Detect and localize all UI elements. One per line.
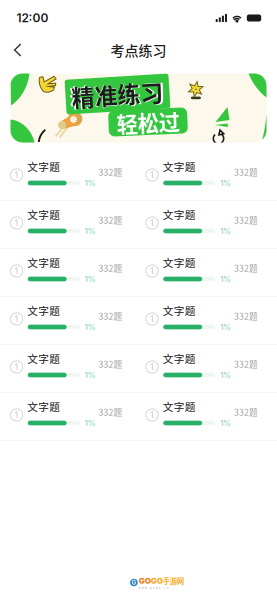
staticText: 1 xyxy=(14,314,18,324)
staticText: 332题 xyxy=(98,262,122,274)
staticText: 文字题 xyxy=(163,207,196,222)
button[interactable]: 1 xyxy=(0,297,135,344)
staticText: 1 xyxy=(150,362,154,372)
staticText: 1 xyxy=(150,218,154,228)
staticText: 文字题 xyxy=(27,303,60,318)
button[interactable]: 1 xyxy=(0,393,135,440)
button[interactable]: 1 xyxy=(135,249,271,296)
staticText: 12:00 xyxy=(16,11,48,25)
staticText: 文字题 xyxy=(163,255,196,270)
staticText: 1 xyxy=(14,410,18,420)
staticText: 332题 xyxy=(98,214,122,226)
staticText: 1 xyxy=(14,266,18,276)
staticText: 精准练习 xyxy=(71,78,163,110)
staticText: 332题 xyxy=(234,262,258,274)
staticText: 1% xyxy=(84,418,95,428)
button[interactable]: 1 xyxy=(0,201,135,248)
staticText: 1% xyxy=(220,370,231,380)
staticText: 1 xyxy=(150,266,154,276)
button[interactable]: 1 xyxy=(135,153,271,200)
staticText: 332题 xyxy=(234,358,258,370)
staticText: 精准练习 xyxy=(69,77,165,111)
staticText: 332题 xyxy=(98,310,122,322)
staticText: 1 xyxy=(14,218,18,228)
staticText: 1 xyxy=(14,170,18,180)
staticText: 332题 xyxy=(98,406,122,418)
button[interactable]: 1 xyxy=(135,201,271,248)
staticText: 文字题 xyxy=(163,399,196,414)
staticText: 1% xyxy=(84,322,95,332)
staticText: 1% xyxy=(84,178,95,188)
staticText: 文字题 xyxy=(163,303,196,318)
staticText: 1% xyxy=(220,274,231,284)
staticText: 1% xyxy=(220,418,231,428)
staticText: 1 xyxy=(150,170,154,180)
staticText: GO xyxy=(139,576,151,586)
staticText: 332题 xyxy=(234,406,258,418)
staticText: 1% xyxy=(220,178,231,188)
button[interactable]: Back xyxy=(0,36,34,64)
staticText: 332题 xyxy=(98,166,122,178)
staticText: 文字题 xyxy=(163,351,196,366)
staticText: 332题 xyxy=(234,166,258,178)
staticText: 1 xyxy=(150,410,154,420)
staticText: 文字题 xyxy=(27,399,60,414)
button[interactable]: 1 xyxy=(0,345,135,392)
staticText: 1 xyxy=(14,362,18,372)
button[interactable]: 1 xyxy=(0,153,135,200)
staticText: 1% xyxy=(220,322,231,332)
staticText: 332题 xyxy=(234,310,258,322)
staticText: w w w . g o g o . c n xyxy=(139,586,169,589)
button[interactable]: 1 xyxy=(135,297,271,344)
button[interactable]: 1 xyxy=(135,393,271,440)
staticText: G xyxy=(131,579,136,586)
staticText: 1% xyxy=(84,370,95,380)
staticText: 手游网 xyxy=(163,575,184,586)
staticText: 文字题 xyxy=(27,207,60,222)
staticText: 332题 xyxy=(98,358,122,370)
button[interactable]: 1 xyxy=(135,345,271,392)
staticText: 文字题 xyxy=(27,351,60,366)
staticText: 1% xyxy=(220,226,231,236)
staticText: 文字题 xyxy=(27,255,60,270)
staticText: 1% xyxy=(84,226,95,236)
staticText: 文字题 xyxy=(163,159,196,174)
staticText: 332题 xyxy=(234,214,258,226)
staticText: 文字题 xyxy=(27,159,60,174)
staticText: 1% xyxy=(84,274,95,284)
staticText: 轻松过 xyxy=(116,107,179,137)
button[interactable]: 1 xyxy=(0,249,135,296)
staticText: 1 xyxy=(150,314,154,324)
staticText: GO xyxy=(151,576,163,586)
staticText: 考点练习 xyxy=(110,40,166,60)
